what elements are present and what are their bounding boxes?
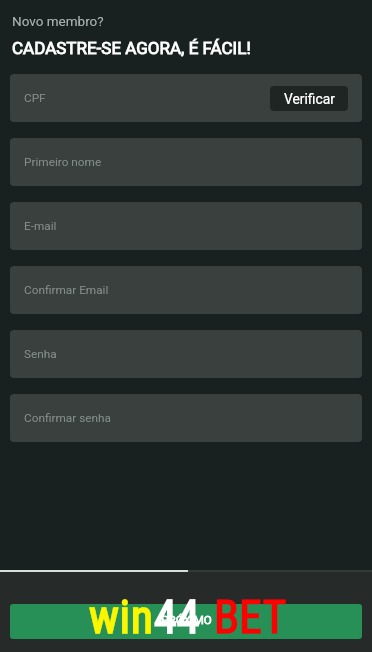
button[interactable]: Senha [10, 330, 362, 378]
staticText: BET [214, 590, 287, 644]
button[interactable]: Confirmar senha [10, 394, 362, 442]
staticText: CPF [24, 91, 46, 105]
button[interactable]: PRÓXIMO [10, 604, 362, 639]
button[interactable]: Verificar [270, 86, 348, 111]
staticText: Verificar [284, 91, 335, 107]
staticText: Confirmar senha [24, 411, 111, 425]
button[interactable]: Confirmar Email [10, 266, 362, 314]
staticText: PRÓXIMO [161, 613, 212, 626]
staticText: Novo membro? [12, 13, 104, 29]
staticText: E-mail [24, 219, 57, 233]
button[interactable]: CPF [10, 74, 362, 122]
staticText: CADASTRE-SE AGORA, É FÁCIL! [12, 38, 251, 58]
button[interactable]: Primeiro nome [10, 138, 362, 186]
staticText: Primeiro nome [24, 155, 102, 169]
staticText: Confirmar Email [24, 283, 109, 297]
button[interactable]: E-mail [10, 202, 362, 250]
staticText: 44 [154, 590, 200, 644]
staticText: Senha [24, 347, 57, 361]
staticText: win [89, 590, 154, 644]
